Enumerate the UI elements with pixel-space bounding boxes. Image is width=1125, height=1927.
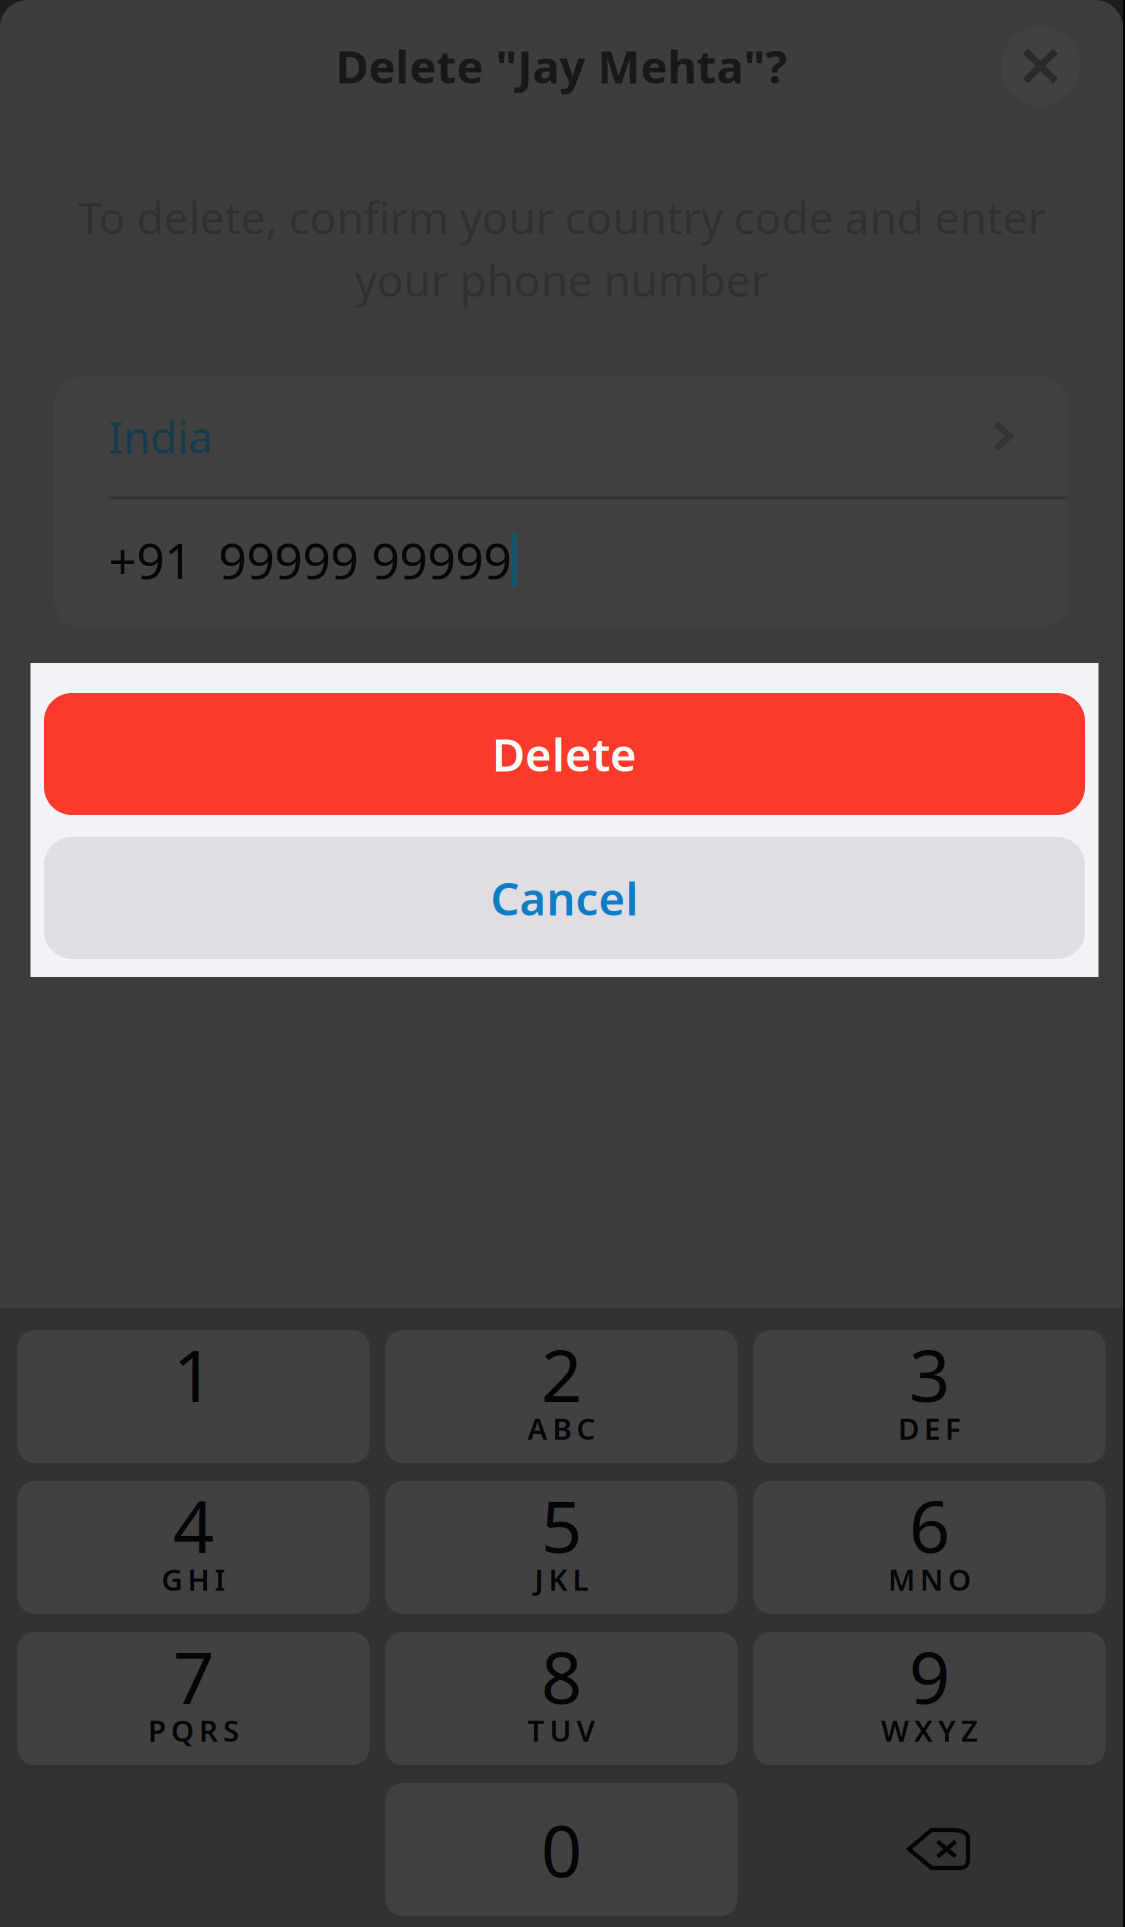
staticText: PQRS	[148, 1711, 239, 1750]
button[interactable]: India	[54, 376, 1068, 496]
staticText: 2	[541, 1326, 582, 1422]
button[interactable]: 9	[753, 1632, 1105, 1765]
button[interactable]: 5	[385, 1481, 737, 1614]
staticText: DEF	[898, 1409, 961, 1448]
staticText: 4	[173, 1477, 214, 1573]
button[interactable]: Close	[1001, 26, 1080, 105]
staticText: JKL	[534, 1560, 588, 1599]
button[interactable]: 6	[753, 1481, 1105, 1614]
button[interactable]: Cancel	[44, 837, 1085, 959]
button[interactable]: 0	[385, 1783, 737, 1916]
button[interactable]: 8	[385, 1632, 737, 1765]
button[interactable]: 7	[17, 1632, 369, 1765]
staticText: 1	[173, 1326, 214, 1422]
staticText: 8	[541, 1628, 582, 1724]
staticText: 9	[909, 1628, 950, 1724]
button[interactable]: 3	[753, 1330, 1105, 1463]
staticText: TUV	[527, 1711, 595, 1750]
button[interactable]: 1	[17, 1330, 369, 1463]
staticText: 5	[541, 1477, 582, 1573]
staticText: WXYZ	[881, 1711, 978, 1750]
staticText: 6	[909, 1477, 950, 1573]
staticText: ABC	[527, 1409, 595, 1448]
staticText: MNO	[888, 1560, 971, 1599]
staticText: 3	[909, 1326, 950, 1422]
staticText: Delete	[492, 724, 637, 784]
staticText: India	[108, 407, 213, 465]
button[interactable]: 4	[17, 1481, 369, 1614]
staticText: Delete "Jay Mehta"?	[335, 36, 787, 96]
staticText: GHI	[161, 1560, 225, 1599]
button[interactable]: 2	[385, 1330, 737, 1463]
staticText: +91 99999 99999	[108, 527, 511, 593]
staticText: To delete, confirm your country code and…	[77, 188, 1045, 309]
staticText: 0	[541, 1802, 582, 1897]
button[interactable]: Delete	[44, 693, 1085, 815]
button[interactable]: Delete	[753, 1783, 1105, 1916]
staticText: 7	[173, 1628, 214, 1724]
staticText: Cancel	[490, 868, 638, 928]
